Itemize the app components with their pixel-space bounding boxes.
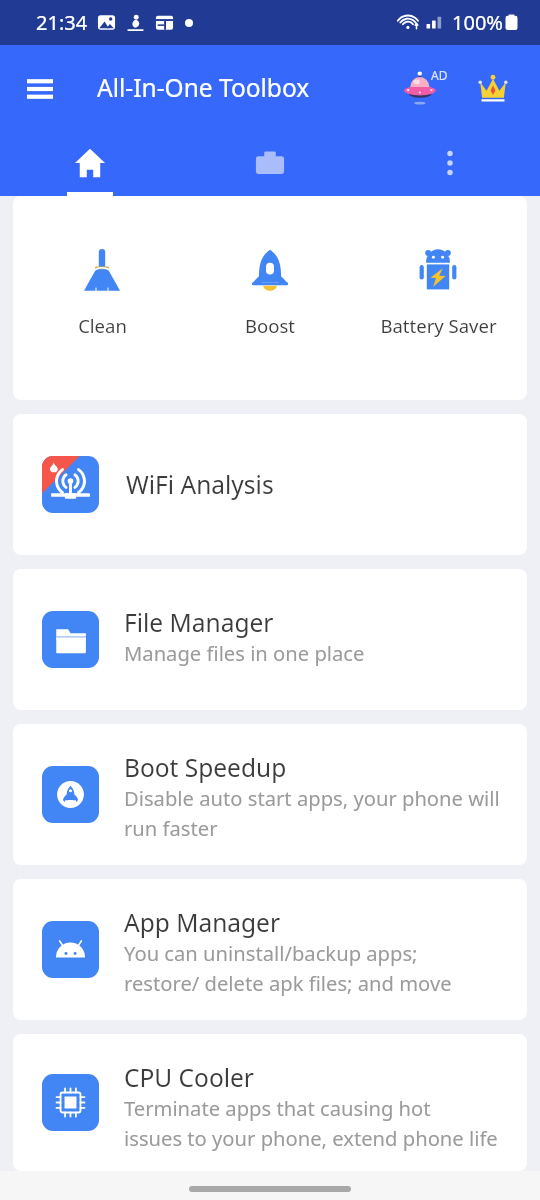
button[interactable]: Tools xyxy=(180,133,360,196)
staticText: All-In-One Toolbox xyxy=(97,71,310,104)
button[interactable]: Clean xyxy=(23,248,181,338)
button[interactable]: Battery Saver xyxy=(359,248,517,338)
staticText: Boot Speedup xyxy=(124,751,287,784)
staticText: App Manager xyxy=(124,906,281,939)
staticText: File Manager xyxy=(124,606,274,639)
staticText: Disable auto start apps, your phone will… xyxy=(124,784,500,841)
staticText: Manage files in one place xyxy=(124,639,365,667)
staticText: Battery Saver xyxy=(380,313,497,338)
button[interactable]: CPU Cooler xyxy=(13,1034,527,1171)
button[interactable]: File Manager xyxy=(13,569,527,710)
staticText: WiFi Analysis xyxy=(126,468,274,501)
staticText: You can uninstall/backup apps; restore/ … xyxy=(124,939,452,996)
button[interactable]: WiFi Analysis xyxy=(13,414,527,555)
button[interactable]: Home xyxy=(0,133,180,196)
staticText: CPU Cooler xyxy=(124,1061,254,1094)
staticText: Terminate apps that causing hot issues t… xyxy=(124,1094,498,1151)
button[interactable]: Premium xyxy=(469,65,517,113)
staticText: Boost xyxy=(245,313,295,338)
button[interactable]: Boost xyxy=(191,248,349,338)
button[interactable]: Ad xyxy=(397,63,449,115)
button[interactable]: App Manager xyxy=(13,879,527,1020)
staticText: AD xyxy=(431,67,448,83)
staticText: 100% xyxy=(452,9,503,36)
button[interactable]: More xyxy=(360,133,540,196)
staticText: Clean xyxy=(78,313,127,338)
button[interactable]: Menu xyxy=(16,65,64,113)
button[interactable]: Boot Speedup xyxy=(13,724,527,865)
staticText: 21:34 xyxy=(36,9,88,36)
